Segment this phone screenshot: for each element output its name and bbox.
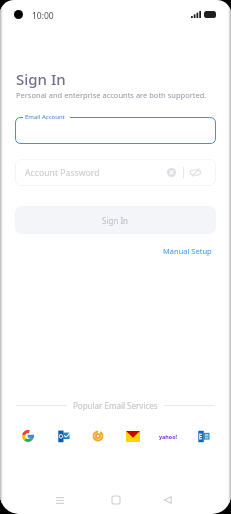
button[interactable]: Mail bbox=[86, 424, 110, 448]
button[interactable]: Google bbox=[16, 424, 40, 448]
button[interactable]: Sign In bbox=[15, 206, 216, 234]
button[interactable]: Show password bbox=[189, 166, 202, 179]
button[interactable]: Clear bbox=[165, 166, 178, 179]
staticText: Sign In bbox=[16, 69, 66, 89]
staticText: Sign In bbox=[102, 215, 129, 226]
staticText: 10:00 bbox=[32, 10, 54, 22]
staticText: Personal and enterprise accounts are bot… bbox=[16, 90, 207, 100]
staticText: yahoo! bbox=[159, 433, 178, 440]
staticText: Account Password bbox=[25, 167, 100, 179]
staticText: Email Account bbox=[25, 113, 65, 121]
button[interactable]: Account Password bbox=[15, 159, 216, 186]
button[interactable]: Manual Setup bbox=[158, 242, 217, 260]
button[interactable]: Recents bbox=[50, 490, 70, 510]
staticText: Manual Setup bbox=[163, 246, 212, 256]
button[interactable]: Email Account bbox=[15, 117, 216, 144]
button[interactable]: Exchange bbox=[191, 424, 215, 448]
button[interactable]: Yahoo bbox=[156, 424, 180, 448]
button[interactable]: Outlook bbox=[51, 424, 75, 448]
button[interactable]: Back bbox=[158, 490, 178, 510]
staticText: Popular Email Services bbox=[73, 400, 158, 411]
button[interactable]: Home bbox=[106, 490, 126, 510]
button[interactable]: Yandex bbox=[121, 424, 145, 448]
